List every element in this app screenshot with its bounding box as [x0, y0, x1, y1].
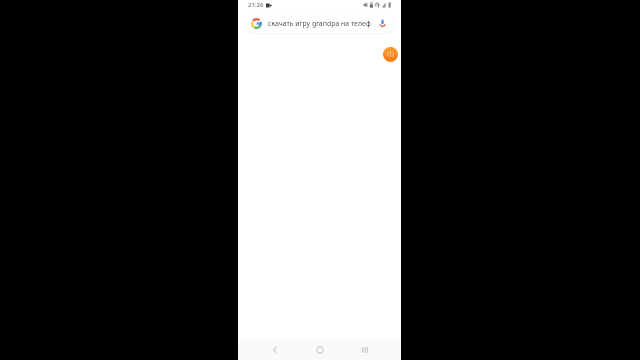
button[interactable]: Back: [252, 339, 297, 360]
button[interactable]: Site icon: [383, 47, 398, 62]
button[interactable]: скачать игру grandpa на телеф: [245, 14, 394, 33]
button[interactable]: Recent apps: [342, 339, 387, 360]
button[interactable]: Voice search: [378, 19, 387, 28]
staticText: скачать игру grandpa на телеф: [268, 19, 371, 28]
button[interactable]: Home: [297, 339, 342, 360]
staticText: 21:26: [248, 1, 264, 9]
